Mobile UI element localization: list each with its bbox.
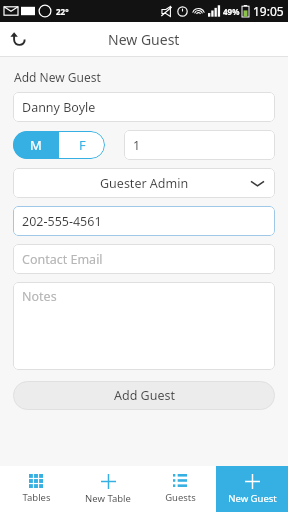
- button[interactable]: New Table: [72, 466, 144, 512]
- staticText: 1: [133, 137, 141, 154]
- staticText: Tables: [22, 491, 51, 504]
- button[interactable]: M: [13, 131, 59, 159]
- staticText: New Table: [85, 492, 131, 505]
- staticText: Add Guest: [114, 387, 175, 404]
- button[interactable]: Contact Email: [13, 244, 275, 274]
- button[interactable]: 1: [124, 130, 275, 160]
- button[interactable]: Guests: [144, 466, 216, 512]
- staticText: New Guest: [108, 30, 180, 49]
- button[interactable]: Notes: [13, 282, 275, 370]
- button[interactable]: Danny Boyle: [13, 92, 275, 122]
- staticText: Guester Admin: [100, 175, 189, 192]
- button[interactable]: F: [59, 131, 105, 159]
- staticText: 202-555-4561: [22, 213, 102, 230]
- button[interactable]: Back: [0, 22, 34, 56]
- staticText: 22°: [56, 6, 69, 17]
- staticText: Danny Boyle: [22, 99, 96, 116]
- staticText: Contact Email: [22, 251, 103, 268]
- button[interactable]: New Guest: [216, 466, 288, 512]
- staticText: Guests: [165, 491, 196, 504]
- staticText: Add New Guest: [14, 69, 101, 85]
- button[interactable]: Tables: [0, 466, 72, 512]
- staticText: F: [79, 136, 86, 154]
- button[interactable]: 202-555-4561: [13, 206, 275, 236]
- button[interactable]: Guester Admin: [13, 168, 275, 198]
- staticText: 19:05: [253, 3, 284, 19]
- button[interactable]: Add Guest: [13, 381, 275, 410]
- staticText: 49%: [223, 6, 240, 17]
- staticText: New Guest: [228, 492, 277, 505]
- staticText: Notes: [22, 288, 57, 305]
- staticText: M: [30, 136, 42, 154]
